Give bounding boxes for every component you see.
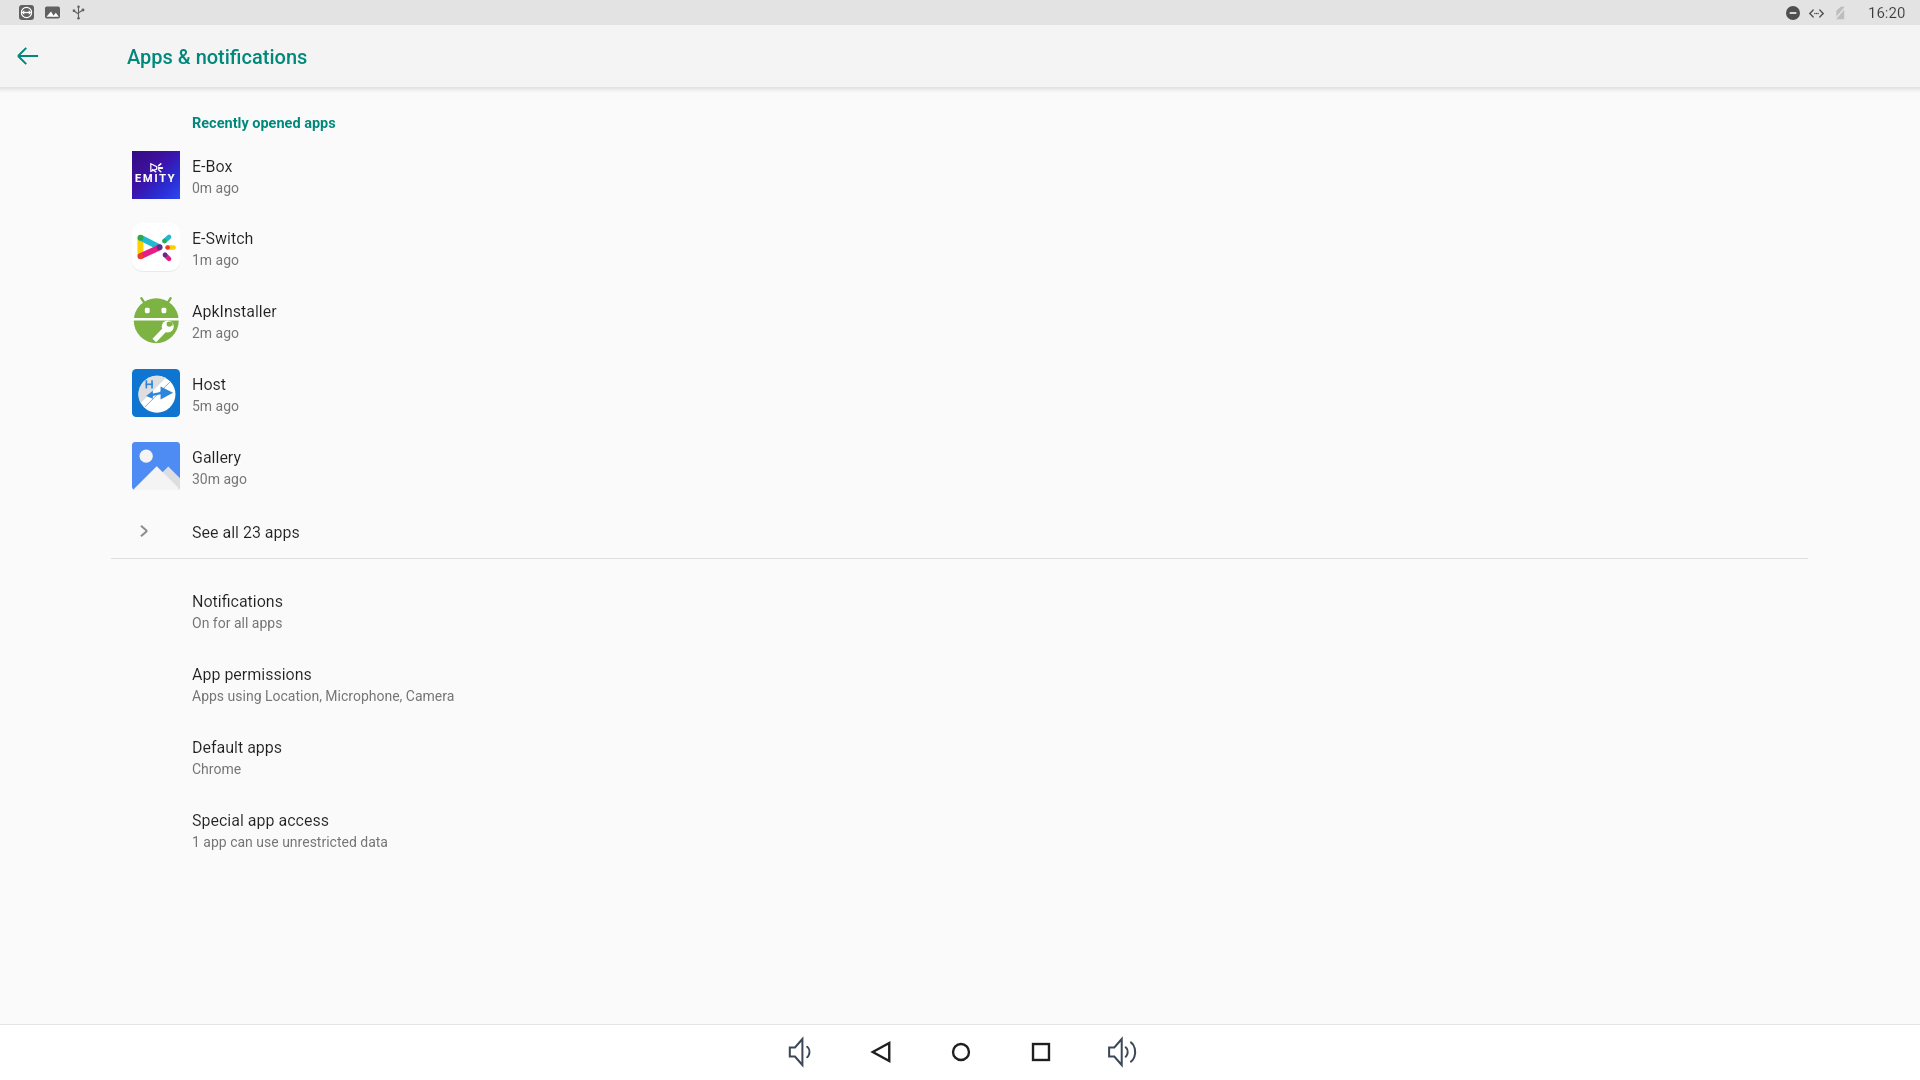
staticText: Gallery bbox=[192, 448, 241, 467]
button[interactable]: Gallery bbox=[0, 430, 1920, 503]
button[interactable]: Volume down bbox=[772, 1024, 829, 1080]
staticText: 16:20 bbox=[1868, 4, 1906, 22]
staticText: Host bbox=[192, 375, 227, 394]
staticText: 30m ago bbox=[192, 471, 247, 487]
staticText: App permissions bbox=[192, 665, 312, 684]
button[interactable]: Default apps bbox=[0, 718, 1920, 790]
staticText: ApkInstaller bbox=[192, 302, 277, 321]
button[interactable]: See all 23 apps bbox=[0, 503, 1920, 558]
staticText: See all 23 apps bbox=[192, 523, 300, 542]
button[interactable]: Recents bbox=[1012, 1024, 1069, 1080]
staticText: 5m ago bbox=[192, 398, 240, 414]
button[interactable]: Host bbox=[0, 357, 1920, 430]
button[interactable]: ApkInstaller bbox=[0, 284, 1920, 357]
staticText: Apps & notifications bbox=[127, 45, 308, 68]
button[interactable]: Special app access bbox=[0, 791, 1920, 863]
staticText: EMITY bbox=[135, 172, 177, 185]
button[interactable]: Back bbox=[3, 31, 52, 80]
button[interactable]: E-Switch bbox=[0, 211, 1920, 284]
button[interactable]: Notifications bbox=[0, 572, 1920, 644]
button[interactable]: Home bbox=[932, 1024, 989, 1080]
button[interactable]: EMITY bbox=[0, 139, 1920, 212]
staticText: 0m ago bbox=[192, 180, 240, 196]
staticText: Default apps bbox=[192, 738, 283, 757]
staticText: 2m ago bbox=[192, 325, 240, 341]
staticText: E-Box bbox=[192, 157, 233, 176]
staticText: Apps using Location, Microphone, Camera bbox=[192, 688, 455, 704]
staticText: Recently opened apps bbox=[192, 115, 336, 132]
button[interactable]: Back bbox=[852, 1024, 909, 1080]
staticText: 1m ago bbox=[192, 252, 240, 268]
staticText: On for all apps bbox=[192, 615, 283, 631]
staticText: E-Switch bbox=[192, 229, 254, 248]
staticText: Notifications bbox=[192, 592, 283, 611]
button[interactable]: Volume up bbox=[1093, 1024, 1150, 1080]
staticText: Chrome bbox=[192, 761, 242, 777]
staticText: Special app access bbox=[192, 811, 329, 830]
button[interactable]: App permissions bbox=[0, 645, 1920, 717]
staticText: 1 app can use unrestricted data bbox=[192, 834, 388, 850]
